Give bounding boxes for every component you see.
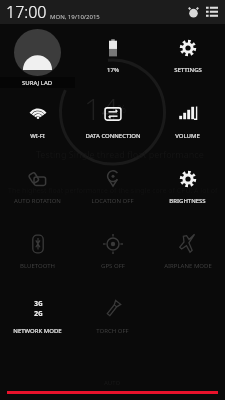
staticText: AUTO ROTATION <box>14 197 61 205</box>
staticText: 17% <box>107 66 119 74</box>
staticText: LOCATION OFF <box>91 197 134 205</box>
staticText: DATA CONNECTION <box>85 132 141 140</box>
button[interactable]: Alarm <box>185 4 201 20</box>
button[interactable]: Airplane mode <box>150 223 225 288</box>
button[interactable]: Torch <box>75 288 150 353</box>
staticText: SURAJ LAD <box>22 79 53 87</box>
staticText: NETWORK MODE <box>13 327 62 335</box>
button[interactable]: Auto rotation <box>0 158 75 223</box>
staticText: Testing Single thread float performance <box>36 148 204 160</box>
button[interactable]: Settings <box>150 27 225 93</box>
staticText: % <box>117 101 127 116</box>
button[interactable]: Bluetooth <box>0 223 75 288</box>
staticText: AIRPLANE MODE <box>164 262 212 270</box>
button[interactable]: Wi-Fi <box>0 93 75 158</box>
staticText: GPS OFF <box>101 262 125 270</box>
button[interactable]: Quick settings list <box>204 4 220 20</box>
button[interactable]: Location <box>75 158 150 223</box>
staticText: The highest float performance of the sin… <box>8 186 218 196</box>
staticText: SETTINGS <box>174 66 202 74</box>
button[interactable]: Brightness <box>150 158 225 223</box>
button[interactable]: Battery <box>75 27 150 93</box>
staticText: VOLUME <box>175 132 200 140</box>
button[interactable]: User profile <box>0 27 75 93</box>
staticText: TORCH OFF <box>96 327 129 335</box>
staticText: 2G <box>34 309 43 319</box>
staticText: MON, 19/10/2015 <box>50 13 100 21</box>
button[interactable]: GPS <box>75 223 150 288</box>
button[interactable]: Network mode <box>0 288 75 353</box>
button[interactable]: Volume <box>150 93 225 158</box>
button[interactable]: Data connection <box>75 93 150 158</box>
staticText: 3G <box>34 299 43 309</box>
staticText: BRIGHTNESS <box>169 197 206 205</box>
staticText: BLUETOOTH <box>20 262 55 270</box>
staticText: 17:00 <box>6 1 47 23</box>
staticText: WI-FI <box>30 132 45 140</box>
staticText: 14 <box>84 88 119 129</box>
